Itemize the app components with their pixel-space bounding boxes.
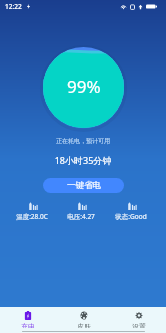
staticText: 正在耗电，预计可用 (0, 137, 166, 145)
button[interactable]: 状态:Good (113, 202, 149, 221)
staticText: 电压:4.27 (63, 212, 99, 221)
staticText: 18小时35分钟 (0, 154, 166, 166)
staticText: 一键省电 (67, 180, 101, 191)
button[interactable]: 温度:28.0C (14, 202, 50, 221)
button[interactable]: 电压:4.27 (63, 202, 99, 221)
staticText: 温度:28.0C (14, 212, 50, 221)
staticText: 设置 (132, 322, 146, 328)
button[interactable]: 设置 (111, 311, 166, 328)
staticText: 状态:Good (113, 212, 149, 221)
staticText: 皮肤 (77, 322, 91, 328)
other: 充电 (24, 311, 32, 320)
staticText: 12:22 (5, 2, 22, 11)
staticText: 充电 (21, 322, 35, 328)
button[interactable]: 一键省电 (43, 178, 124, 193)
button[interactable]: 充电 (0, 311, 56, 328)
other: 皮肤 (80, 311, 88, 320)
staticText: 99% (67, 75, 101, 98)
other: 设置 (135, 311, 143, 320)
button[interactable]: 皮肤 (56, 311, 111, 328)
